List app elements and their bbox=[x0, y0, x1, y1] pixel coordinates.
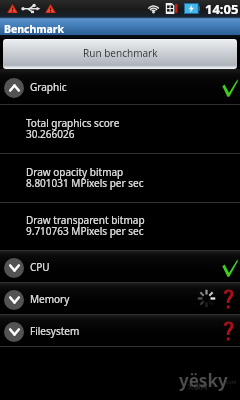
button[interactable]: Run benchmark bbox=[3, 39, 237, 69]
button[interactable]: Graphic bbox=[0, 69, 240, 104]
staticText: Benchmark bbox=[4, 22, 65, 36]
staticText: Draw transparent bitmap 9.710763 MPixels… bbox=[26, 213, 145, 238]
button[interactable]: Draw transparent bitmap 9.710763 MPixels… bbox=[0, 203, 240, 250]
staticText: Graphic bbox=[30, 80, 67, 94]
staticText: Run benchmark bbox=[83, 46, 158, 60]
button[interactable]: Filesystem bbox=[0, 315, 240, 346]
staticText: yësky bbox=[179, 369, 228, 392]
staticText: CPU bbox=[30, 260, 50, 274]
button[interactable]: Draw opacity bitmap 8.801031 MPixels per… bbox=[0, 154, 240, 202]
staticText: Filesystem bbox=[30, 324, 80, 338]
staticText: .com bbox=[225, 379, 237, 386]
button[interactable]: Memory bbox=[0, 283, 240, 314]
staticText: 14:05 bbox=[205, 0, 239, 17]
button[interactable]: Total graphics score 30.266026 bbox=[0, 105, 240, 153]
staticText: Memory bbox=[30, 292, 70, 306]
staticText: 天极网 bbox=[187, 382, 208, 391]
button[interactable]: CPU bbox=[0, 251, 240, 282]
staticText: Draw opacity bitmap 8.801031 MPixels per… bbox=[26, 165, 144, 190]
staticText: Total graphics score 30.266026 bbox=[26, 116, 120, 141]
